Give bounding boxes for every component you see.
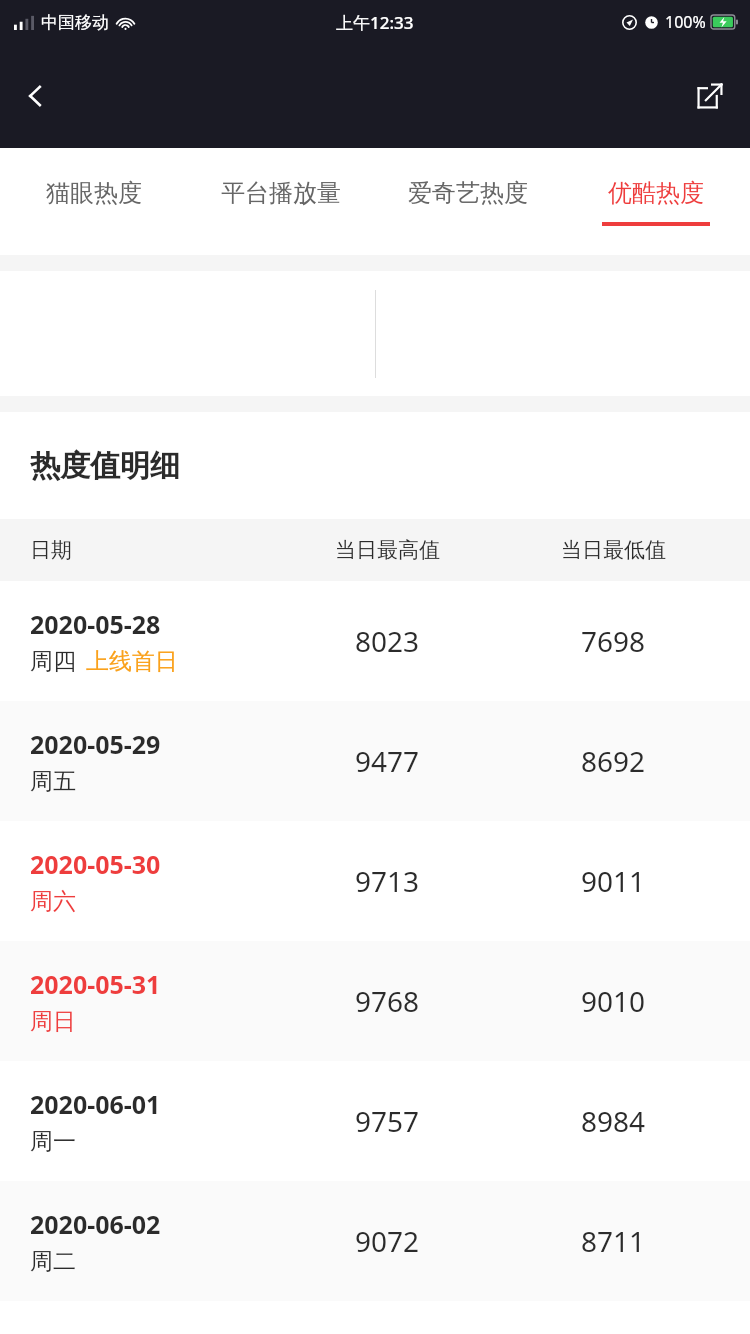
staticText: 9477 bbox=[355, 742, 420, 780]
staticText: 2020-05-29 bbox=[30, 727, 161, 761]
staticText: 周四 bbox=[30, 647, 76, 676]
staticText: 周二 bbox=[30, 1247, 76, 1276]
button[interactable]: 2020-06-01 bbox=[0, 1061, 750, 1181]
staticText: 9757 bbox=[355, 1102, 420, 1140]
staticText: 爱奇艺热度 bbox=[408, 178, 528, 208]
button[interactable]: 2020-05-29 bbox=[0, 701, 750, 821]
button[interactable]: 2020-05-28 bbox=[0, 581, 750, 701]
staticText: 8984 bbox=[581, 1102, 646, 1140]
staticText: 2020-06-01 bbox=[30, 1087, 161, 1121]
staticText: 日期 bbox=[30, 537, 72, 563]
staticText: 9011 bbox=[581, 862, 646, 900]
staticText: 9768 bbox=[355, 982, 420, 1020]
staticText: 周六 bbox=[30, 887, 76, 916]
button[interactable]: 平台播放量 bbox=[187, 148, 374, 255]
staticText: 周一 bbox=[30, 1127, 76, 1156]
staticText: 9072 bbox=[355, 1222, 420, 1260]
staticText: 2020-05-28 bbox=[30, 607, 161, 641]
staticText: 9713 bbox=[355, 862, 420, 900]
staticText: 2020-05-31 bbox=[30, 967, 161, 1001]
button[interactable]: Back bbox=[8, 68, 64, 124]
staticText: 中国移动 bbox=[41, 12, 109, 33]
staticText: 8711 bbox=[581, 1222, 646, 1260]
button[interactable]: Share bbox=[684, 70, 736, 122]
staticText: 平台播放量 bbox=[221, 178, 341, 208]
button[interactable]: 猫眼热度 bbox=[0, 148, 187, 255]
button[interactable]: 爱奇艺热度 bbox=[374, 148, 562, 255]
staticText: 当日最高值 bbox=[335, 537, 440, 563]
staticText: 周日 bbox=[30, 1007, 76, 1036]
staticText: 上午12:33 bbox=[336, 11, 414, 34]
button[interactable]: 2020-06-02 bbox=[0, 1181, 750, 1301]
staticText: 2020-06-02 bbox=[30, 1207, 161, 1241]
button[interactable]: 2020-05-31 bbox=[0, 941, 750, 1061]
staticText: 周五 bbox=[30, 767, 76, 796]
staticText: 9010 bbox=[581, 982, 646, 1020]
staticText: 7698 bbox=[581, 622, 646, 660]
staticText: 8692 bbox=[581, 742, 646, 780]
staticText: 上线首日 bbox=[86, 647, 178, 676]
button[interactable]: 优酷热度 bbox=[562, 148, 750, 255]
staticText: 猫眼热度 bbox=[46, 178, 142, 208]
staticText: 2020-05-30 bbox=[30, 847, 161, 881]
staticText: 当日最低值 bbox=[561, 537, 666, 563]
staticText: 8023 bbox=[355, 622, 420, 660]
staticText: 热度值明细 bbox=[30, 447, 180, 485]
staticText: 100% bbox=[665, 11, 706, 33]
button[interactable]: 2020-05-30 bbox=[0, 821, 750, 941]
staticText: 优酷热度 bbox=[608, 178, 704, 208]
